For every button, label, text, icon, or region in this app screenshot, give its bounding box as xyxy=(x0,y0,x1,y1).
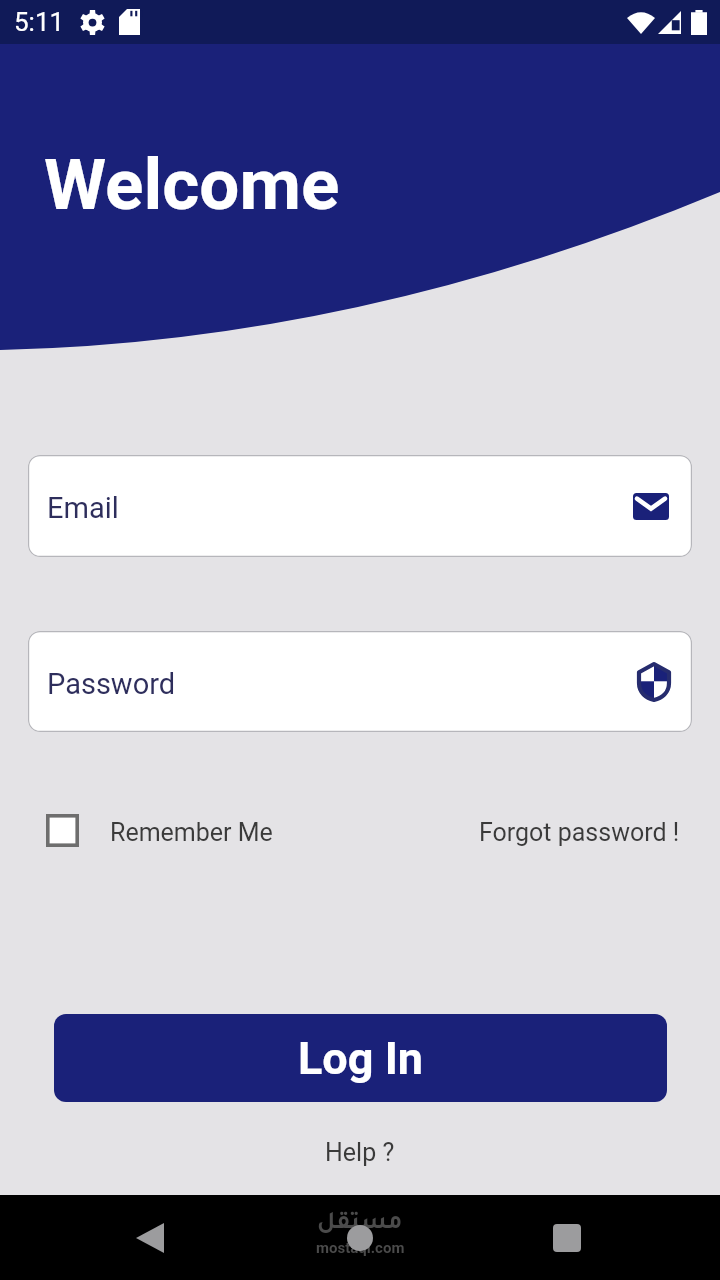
button[interactable]: Recents xyxy=(527,1198,607,1278)
button[interactable]: Help ? xyxy=(313,1134,407,1171)
button[interactable]: Forgot password ! xyxy=(471,813,688,852)
button[interactable]: Home xyxy=(320,1198,400,1278)
button[interactable]: Back xyxy=(110,1198,190,1278)
staticText: 5:11 xyxy=(14,7,65,37)
staticText: Email xyxy=(47,491,119,525)
staticText: Password xyxy=(47,667,176,701)
button[interactable]: Remember Me xyxy=(40,808,279,853)
staticText: Remember Me xyxy=(110,818,273,847)
button[interactable]: Email xyxy=(28,455,692,557)
staticText: مستقل xyxy=(317,1212,403,1237)
button[interactable]: Log In xyxy=(54,1014,667,1102)
staticText: Log In xyxy=(298,1032,424,1085)
staticText: mostaql.com xyxy=(316,1239,405,1257)
staticText: Welcome xyxy=(44,143,340,226)
button[interactable]: Password xyxy=(28,631,692,732)
